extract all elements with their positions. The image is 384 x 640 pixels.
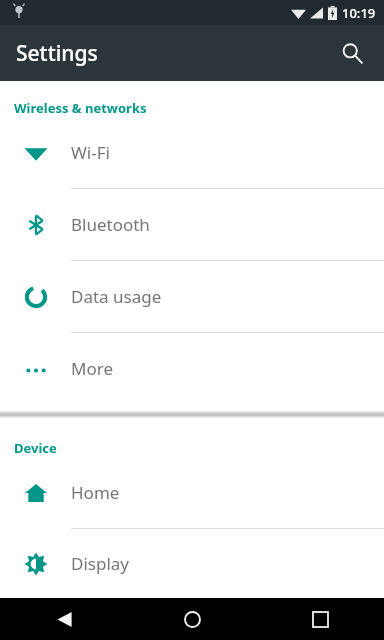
staticText: Display (71, 552, 129, 575)
button[interactable]: Bluetooth (0, 189, 384, 260)
button[interactable]: Home (0, 457, 384, 528)
staticText: More (71, 357, 113, 380)
button[interactable]: Wi-Fi (0, 117, 384, 188)
staticText: 10:19 (342, 4, 376, 22)
staticText: Settings (16, 39, 98, 68)
staticText: Home (71, 481, 120, 504)
button[interactable]: Home (128, 598, 256, 640)
button[interactable]: Recent apps (256, 598, 384, 640)
staticText: Wireless & networks (14, 99, 147, 117)
button[interactable]: Search (328, 29, 376, 77)
button[interactable]: Data usage (0, 261, 384, 332)
staticText: Wi-Fi (71, 141, 110, 164)
staticText: Device (14, 439, 57, 457)
staticText: Bluetooth (71, 213, 150, 236)
button[interactable]: More (0, 333, 384, 404)
staticText: Data usage (71, 285, 162, 308)
button[interactable]: Display (0, 529, 384, 598)
button[interactable]: Back (0, 598, 128, 640)
